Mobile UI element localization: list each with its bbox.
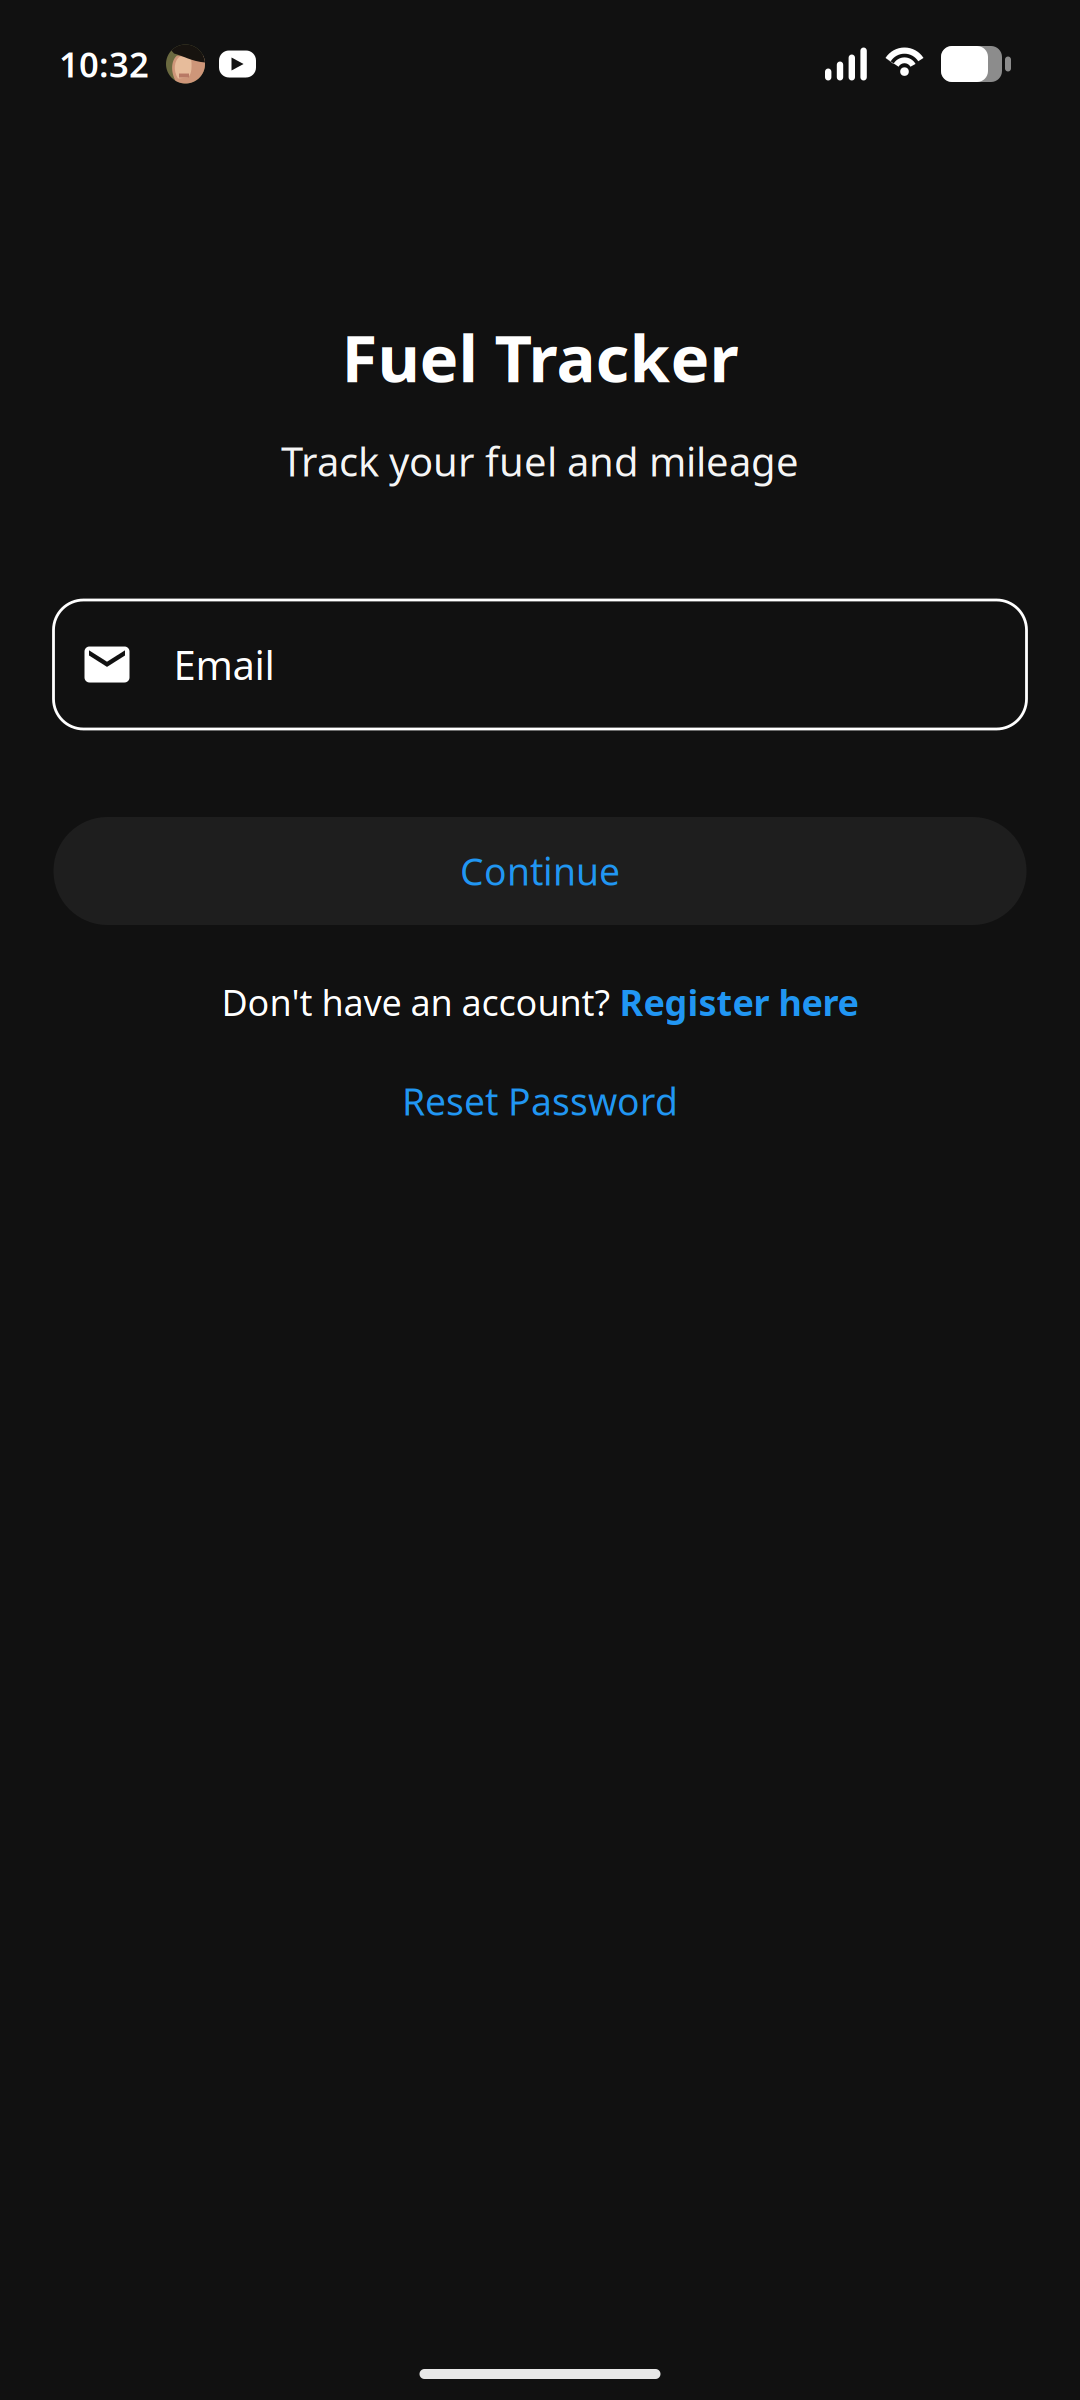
staticText: Reset Password xyxy=(402,1076,678,1126)
staticText: Fuel Tracker xyxy=(341,314,738,400)
staticText: Track your fuel and mileage xyxy=(281,434,799,487)
staticText: 10:32 xyxy=(59,41,149,87)
staticText: Register here xyxy=(619,978,858,1026)
staticText: Email xyxy=(173,638,274,691)
button[interactable]: Email xyxy=(53,600,1026,729)
staticText: Continue xyxy=(460,846,620,896)
button[interactable]: Reset Password xyxy=(402,1073,678,1129)
button[interactable]: Don't have an account? xyxy=(221,974,858,1030)
button[interactable]: Continue xyxy=(53,817,1026,925)
staticText: Don't have an account? xyxy=(221,978,619,1026)
